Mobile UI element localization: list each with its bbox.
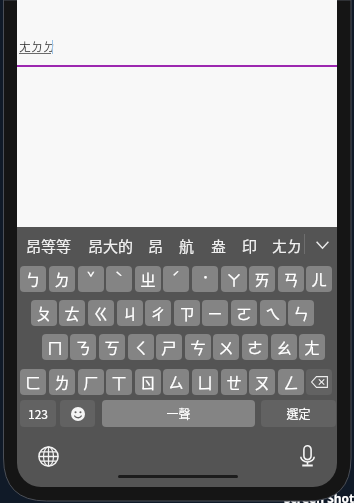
button[interactable]: Backspace <box>306 369 332 395</box>
button[interactable]: ㄡ <box>249 369 275 395</box>
button[interactable]: ˋ <box>106 266 132 292</box>
button[interactable]: ㄜ <box>242 334 268 360</box>
button[interactable]: ㄓ <box>135 266 161 292</box>
button[interactable]: 昂 <box>148 231 164 261</box>
staticText: ㄕ <box>161 336 177 358</box>
staticText: ㄟ <box>265 302 281 324</box>
button[interactable]: ㄍ <box>88 300 114 326</box>
button[interactable]: ㄎ <box>99 334 125 360</box>
button[interactable]: ㄇ <box>42 334 68 360</box>
button[interactable]: 印 <box>242 231 258 261</box>
button[interactable]: ㄖ <box>135 369 161 395</box>
button[interactable]: Expand suggestions <box>309 232 335 258</box>
button[interactable]: ㄚ <box>221 266 247 292</box>
staticText: ㄓ <box>140 268 156 290</box>
button[interactable]: ㄦ <box>306 266 332 292</box>
button[interactable]: ㄌ <box>49 369 75 395</box>
staticText: 選定 <box>286 405 311 422</box>
staticText: ㄦ <box>311 268 327 290</box>
staticText: ㄝ <box>226 371 242 393</box>
staticText: 印 <box>242 235 258 257</box>
staticText: 昂大的 <box>88 235 134 257</box>
staticText: ㄙ <box>168 371 184 393</box>
button[interactable]: Change keyboard language <box>35 443 61 469</box>
button[interactable]: ㄤㄉ <box>272 231 303 261</box>
button[interactable]: ㄗ <box>174 300 200 326</box>
button[interactable]: ㄉ <box>49 266 75 292</box>
staticText: 盎 <box>211 235 227 257</box>
button[interactable]: ㄧ <box>202 300 228 326</box>
button[interactable]: ㄈ <box>20 369 46 395</box>
staticText: ㄥ <box>283 371 299 393</box>
button[interactable]: ㄋ <box>70 334 96 360</box>
staticText: ㄞ <box>254 268 270 290</box>
staticText: ㄠ <box>276 336 292 358</box>
staticText: ㄛ <box>236 302 252 324</box>
button[interactable]: 昂大的 <box>88 231 134 261</box>
staticText: 航 <box>179 235 195 257</box>
staticText: ㄊ <box>64 302 80 324</box>
staticText: ˇ <box>87 267 95 286</box>
staticText: ㄎ <box>104 336 120 358</box>
button[interactable]: ˊ <box>163 266 189 292</box>
button[interactable]: 航 <box>179 231 195 261</box>
staticText: 昂 <box>148 235 164 257</box>
staticText: 一聲 <box>166 405 191 422</box>
staticText: ㄈ <box>25 371 41 393</box>
button[interactable]: ㄤ <box>299 334 325 360</box>
button[interactable]: 一聲 <box>102 400 255 427</box>
staticText: ˊ <box>172 267 180 286</box>
button[interactable]: Emoji <box>60 400 95 427</box>
staticText: ㄤㄉㄉ <box>19 38 56 55</box>
staticText: 123 <box>28 405 48 422</box>
button[interactable]: 昂等等 <box>26 231 72 261</box>
button[interactable]: ㄣ <box>288 300 314 326</box>
button[interactable]: ㄏ <box>78 369 104 395</box>
staticText: ㄚ <box>226 268 242 290</box>
staticText: ㄤ <box>304 336 320 358</box>
staticText: Screen Shot <box>284 490 354 503</box>
button[interactable]: ㄒ <box>106 369 132 395</box>
button[interactable]: ㄕ <box>156 334 182 360</box>
staticText: ㄨ <box>218 336 234 358</box>
staticText: ㄡ <box>254 371 270 393</box>
button[interactable]: ㄥ <box>278 369 304 395</box>
button[interactable]: Voice input <box>293 442 321 470</box>
button[interactable]: 盎 <box>211 231 227 261</box>
button[interactable]: ㄢ <box>278 266 304 292</box>
staticText: ㄅ <box>25 268 41 290</box>
button[interactable]: ㄞ <box>249 266 275 292</box>
staticText: 昂等等 <box>26 235 72 257</box>
staticText: ㄗ <box>179 302 195 324</box>
staticText: ㄢ <box>283 268 299 290</box>
button[interactable]: ㄆ <box>31 300 57 326</box>
staticText: ㄩ <box>197 371 213 393</box>
button[interactable]: ㄟ <box>260 300 286 326</box>
button[interactable]: ㄅ <box>20 266 46 292</box>
staticText: ㄑ <box>133 336 149 358</box>
button[interactable]: ˙ <box>192 266 218 292</box>
staticText: ㄤㄉ <box>272 235 303 257</box>
staticText: ㄍ <box>93 302 109 324</box>
staticText: ㄋ <box>75 336 91 358</box>
staticText: ˙ <box>202 267 209 286</box>
button[interactable]: ㄊ <box>59 300 85 326</box>
staticText: ㄏ <box>83 371 99 393</box>
button[interactable]: ㄐ <box>117 300 143 326</box>
staticText: ˋ <box>115 267 123 286</box>
button[interactable]: ㄤㄉㄉ <box>19 38 56 55</box>
button[interactable]: ˇ <box>78 266 104 292</box>
button[interactable]: ㄑ <box>128 334 154 360</box>
button[interactable]: ㄨ <box>213 334 239 360</box>
button[interactable]: ㄝ <box>221 369 247 395</box>
staticText: ㄧ <box>207 302 223 324</box>
button[interactable]: ㄘ <box>185 334 211 360</box>
button[interactable]: ㄠ <box>271 334 297 360</box>
button[interactable]: 123 <box>20 400 56 427</box>
button[interactable]: ㄛ <box>231 300 257 326</box>
button[interactable]: ㄙ <box>163 369 189 395</box>
button[interactable]: ㄔ <box>145 300 171 326</box>
button[interactable]: 選定 <box>261 400 336 427</box>
staticText: ㄘ <box>190 336 206 358</box>
button[interactable]: ㄩ <box>192 369 218 395</box>
